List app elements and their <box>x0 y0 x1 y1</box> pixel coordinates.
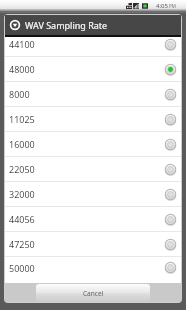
button[interactable]: 47250 <box>5 232 181 256</box>
staticText: 47250 <box>9 238 35 250</box>
staticText: PM <box>169 3 176 9</box>
staticText: 44100 <box>9 38 35 50</box>
button[interactable]: 11025 <box>5 107 181 131</box>
other: Alert <box>8 18 22 32</box>
staticText: WAV Sampling Rate <box>25 19 108 31</box>
staticText: 22050 <box>9 163 35 175</box>
button[interactable]: Cancel <box>36 284 150 302</box>
staticText: 44056 <box>9 213 35 225</box>
button[interactable]: 32000 <box>5 182 181 206</box>
staticText: 32000 <box>9 188 35 200</box>
button[interactable]: 16000 <box>5 132 181 156</box>
button[interactable]: 50000 <box>5 257 181 278</box>
staticText: 50000 <box>9 262 35 274</box>
button[interactable]: 44056 <box>5 207 181 231</box>
staticText: 11025 <box>9 113 35 125</box>
button[interactable]: 44100 <box>5 32 181 56</box>
staticText: 8000 <box>9 88 30 100</box>
button[interactable]: 22050 <box>5 157 181 181</box>
staticText: Cancel <box>83 289 104 298</box>
staticText: 16000 <box>9 138 35 150</box>
button[interactable]: 48000 <box>5 57 181 81</box>
staticText: 4:05 <box>156 2 168 10</box>
staticText: 48000 <box>9 63 35 75</box>
button[interactable]: 8000 <box>5 82 181 106</box>
